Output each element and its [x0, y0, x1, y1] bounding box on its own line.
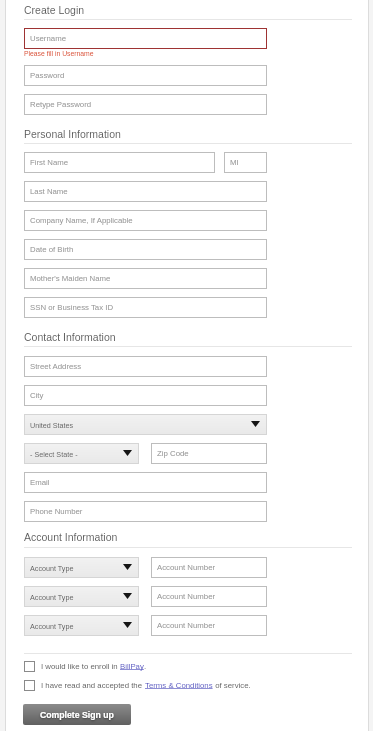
staticText: Username	[30, 34, 66, 43]
button[interactable]: Retype Password	[24, 94, 267, 115]
staticText: Contact Information	[24, 331, 116, 343]
staticText: Mother's Maiden Name	[30, 274, 111, 283]
button[interactable]: Zip Code	[151, 443, 267, 464]
staticText: Account Number	[157, 563, 216, 572]
staticText: Personal Information	[24, 128, 121, 140]
staticText: of service.	[213, 681, 251, 690]
button[interactable]: Account Type	[24, 615, 139, 636]
staticText: I would like to enroll in	[41, 662, 120, 671]
staticText: SSN or Business Tax ID	[30, 303, 114, 312]
button[interactable]: MI	[224, 152, 267, 173]
staticText: City	[30, 391, 44, 400]
staticText: Email	[30, 478, 50, 487]
staticText: Account Number	[157, 621, 216, 630]
staticText: First Name	[30, 158, 69, 167]
button[interactable]: Date of Birth	[24, 239, 267, 260]
button[interactable]: Username	[24, 28, 267, 49]
button[interactable]: Company Name, If Applicable	[24, 210, 267, 231]
button[interactable]: Account Number	[151, 557, 267, 578]
button[interactable]: I would like to enroll in	[24, 660, 147, 672]
staticText: - Select State -	[30, 450, 78, 458]
button[interactable]: - Select State -	[24, 443, 139, 464]
button[interactable]: Account Number	[151, 615, 267, 636]
button[interactable]: Phone Number	[24, 501, 267, 522]
button[interactable]: Complete Sign up	[23, 704, 131, 725]
staticText: Please fill in Username	[24, 50, 94, 58]
staticText: Date of Birth	[30, 245, 74, 254]
button[interactable]: I have read and accepted the	[24, 679, 251, 691]
staticText: Terms & Conditions	[145, 681, 213, 690]
staticText: Retype Password	[30, 100, 92, 109]
button[interactable]: First Name	[24, 152, 215, 173]
button[interactable]: Last Name	[24, 181, 267, 202]
staticText: .	[144, 662, 147, 671]
button[interactable]: Password	[24, 65, 267, 86]
staticText: Password	[30, 71, 65, 80]
button[interactable]: United States	[24, 414, 267, 435]
staticText: Street Address	[30, 362, 82, 371]
staticText: Zip Code	[157, 449, 189, 458]
staticText: Complete Sign up	[40, 710, 114, 720]
staticText: Account Number	[157, 592, 216, 601]
button[interactable]: Account Number	[151, 586, 267, 607]
staticText: Account Type	[30, 593, 74, 601]
staticText: Account Type	[30, 622, 74, 630]
button[interactable]: Mother's Maiden Name	[24, 268, 267, 289]
button[interactable]: SSN or Business Tax ID	[24, 297, 267, 318]
staticText: Last Name	[30, 187, 68, 196]
staticText: BillPay	[120, 662, 144, 671]
button[interactable]: Email	[24, 472, 267, 493]
staticText: MI	[230, 158, 239, 167]
staticText: Create Login	[24, 4, 85, 16]
button[interactable]: Account Type	[24, 557, 139, 578]
staticText: I have read and accepted the	[41, 681, 145, 690]
staticText: United States	[30, 421, 74, 429]
staticText: Phone Number	[30, 507, 83, 516]
button[interactable]: City	[24, 385, 267, 406]
staticText: Company Name, If Applicable	[30, 216, 133, 225]
button[interactable]: Account Type	[24, 586, 139, 607]
button[interactable]: Street Address	[24, 356, 267, 377]
staticText: Account Type	[30, 564, 74, 572]
staticText: Account Information	[24, 531, 118, 543]
